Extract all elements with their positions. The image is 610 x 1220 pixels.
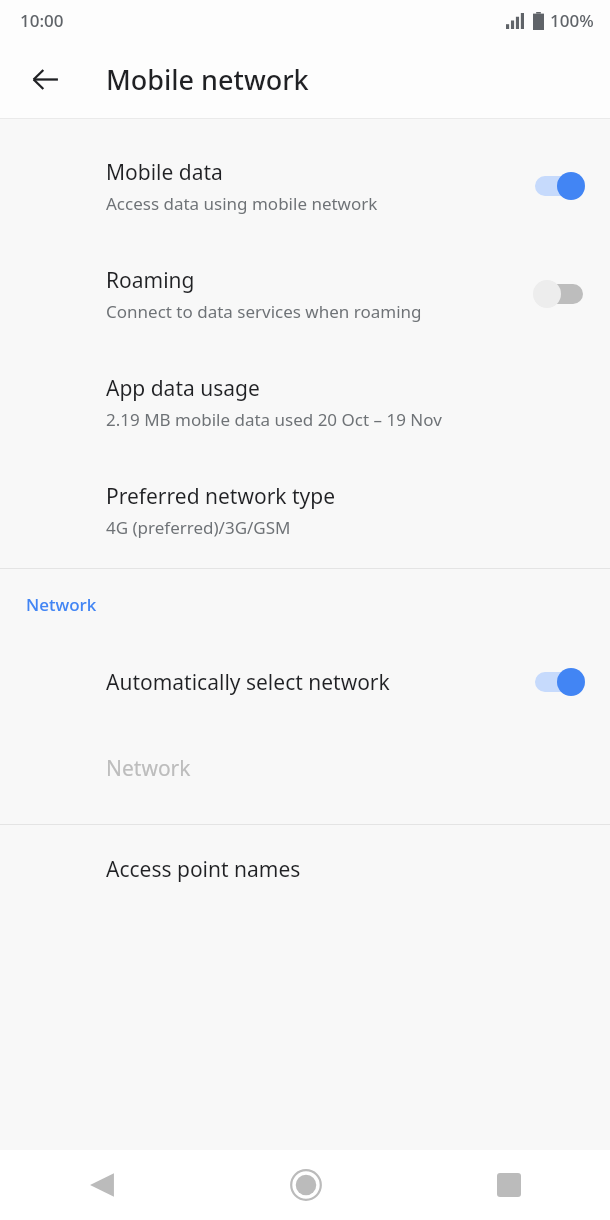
staticText: 10:00 [20, 9, 64, 32]
staticText: App data usage [106, 374, 260, 403]
staticText: Access data using mobile network [106, 192, 378, 215]
staticText: Connect to data services when roaming [106, 300, 422, 323]
button[interactable]: Home [204, 1150, 407, 1220]
button[interactable]: Back [18, 52, 72, 106]
button[interactable]: Roaming [0, 240, 610, 348]
staticText: Roaming [106, 266, 195, 295]
button[interactable]: Automatically select network [528, 658, 592, 706]
button[interactable]: Recent apps [407, 1150, 610, 1220]
staticText: Preferred network type [106, 482, 336, 511]
button[interactable]: Access point names [0, 825, 610, 913]
staticText: Network [26, 593, 97, 616]
staticText: 4G (preferred)/3G/GSM [106, 516, 291, 539]
staticText: Network [106, 754, 191, 783]
button[interactable]: Roaming [528, 270, 592, 318]
button[interactable]: Preferred network type [0, 456, 610, 564]
button[interactable]: Automatically select network [0, 639, 610, 725]
button[interactable]: Mobile data [528, 162, 592, 210]
staticText: Mobile data [106, 158, 223, 187]
staticText: Mobile network [106, 61, 309, 98]
button[interactable]: App data usage [0, 348, 610, 456]
staticText: Access point names [106, 855, 301, 884]
staticText: 2.19 MB mobile data used 20 Oct – 19 Nov [106, 408, 442, 431]
staticText: 100% [550, 9, 594, 32]
button[interactable]: Network [0, 725, 610, 811]
button[interactable]: Mobile data [0, 132, 610, 240]
button[interactable]: Back [0, 1150, 204, 1220]
staticText: Automatically select network [106, 668, 390, 697]
